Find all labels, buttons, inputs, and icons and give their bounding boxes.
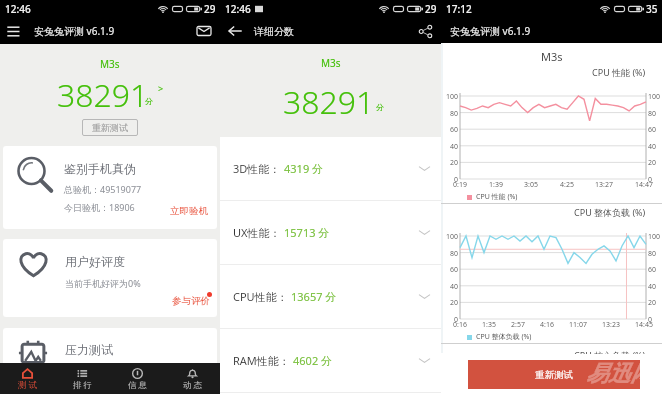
- staticText: 60: [441, 265, 458, 275]
- staticText: 100: [648, 92, 662, 102]
- staticText: 2:57: [511, 320, 525, 330]
- button[interactable]: Back: [228, 24, 242, 38]
- staticText: 60: [648, 265, 662, 275]
- staticText: 3:05: [524, 180, 538, 190]
- button[interactable]: 动态: [165, 363, 220, 394]
- staticText: RAM性能：: [233, 353, 290, 368]
- staticText: 1:39: [489, 180, 503, 190]
- staticText: CPU 整体负载 (%): [476, 332, 532, 342]
- staticText: 13:27: [595, 180, 613, 190]
- button[interactable]: 排行: [55, 363, 110, 394]
- staticText: 100: [441, 232, 458, 242]
- staticText: CPU 性能 (%): [476, 192, 518, 202]
- staticText: 14:47: [635, 180, 653, 190]
- staticText: 12:46: [5, 2, 31, 16]
- staticText: 80: [648, 109, 662, 119]
- staticText: 4:16: [540, 320, 554, 330]
- staticText: 安兔兔评测 v6.1.9: [450, 24, 531, 38]
- staticText: 40: [648, 142, 662, 152]
- staticText: 详细分数: [254, 25, 294, 38]
- staticText: 信息: [127, 380, 148, 391]
- staticText: 13:23: [602, 320, 620, 330]
- staticText: 20: [648, 158, 662, 168]
- staticText: 安兔兔评测 v6.1.9: [34, 24, 115, 38]
- staticText: 0: [441, 315, 458, 325]
- staticText: 11:07: [569, 320, 587, 330]
- staticText: 3D性能：: [233, 161, 281, 176]
- staticText: 80: [648, 249, 662, 259]
- staticText: 29: [204, 2, 216, 16]
- button[interactable]: UX性能：: [220, 201, 441, 264]
- staticText: 鉴别手机真伪: [64, 161, 136, 176]
- staticText: 80: [441, 109, 458, 119]
- staticText: 60: [648, 125, 662, 135]
- staticText: 重新测试: [535, 369, 573, 381]
- staticText: CPU 核心负载 (%): [574, 349, 646, 354]
- staticText: 0: [648, 315, 662, 325]
- staticText: 20: [648, 298, 662, 308]
- staticText: 0:19: [453, 180, 467, 190]
- staticText: 分: [376, 102, 384, 112]
- staticText: >: [158, 82, 164, 94]
- button[interactable]: 3D性能：: [220, 137, 441, 200]
- button[interactable]: 鉴别手机真伪: [3, 146, 217, 229]
- staticText: 0:16: [453, 320, 467, 330]
- staticText: 40: [648, 282, 662, 292]
- staticText: CPU 性能 (%): [592, 66, 646, 78]
- staticText: 60: [441, 125, 458, 135]
- staticText: M3s: [100, 57, 120, 71]
- button[interactable]: 重新测试: [468, 360, 640, 389]
- staticText: 动态: [182, 380, 203, 391]
- staticText: 总验机：49519077: [64, 183, 142, 195]
- staticText: 今日验机：18906: [64, 201, 135, 213]
- staticText: 4602 分: [293, 353, 333, 368]
- button[interactable]: CPU性能：: [220, 265, 441, 328]
- staticText: 0: [648, 175, 662, 185]
- staticText: 测试: [17, 380, 38, 391]
- button[interactable]: Share: [419, 25, 432, 38]
- staticText: 1:35: [482, 320, 496, 330]
- button[interactable]: RAM性能：: [220, 329, 441, 392]
- staticText: 0: [441, 175, 458, 185]
- staticText: 100: [441, 92, 458, 102]
- staticText: 38291: [57, 73, 149, 117]
- staticText: 13657 分: [291, 289, 337, 304]
- staticText: 当前手机好评为0%: [65, 277, 141, 289]
- staticText: 17:12: [446, 2, 472, 16]
- staticText: 15713 分: [284, 225, 330, 240]
- staticText: 29: [425, 2, 437, 16]
- staticText: M3s: [321, 56, 341, 70]
- staticText: CPU 整体负载 (%): [574, 206, 646, 218]
- staticText: 38291: [283, 80, 375, 124]
- staticText: 40: [441, 142, 458, 152]
- staticText: 20: [441, 158, 458, 168]
- staticText: 100: [648, 232, 662, 242]
- staticText: 4319 分: [284, 161, 324, 176]
- staticText: 80: [441, 249, 458, 259]
- button[interactable]: 测试: [0, 363, 55, 394]
- staticText: 14:45: [635, 320, 653, 330]
- staticText: 4:25: [560, 180, 574, 190]
- staticText: 易迅网: [586, 360, 652, 388]
- staticText: 压力测试: [65, 342, 113, 357]
- staticText: 立即验机: [170, 205, 208, 217]
- staticText: 排行: [72, 380, 93, 391]
- staticText: 分: [145, 96, 153, 106]
- staticText: UX性能：: [233, 225, 281, 240]
- staticText: 35: [646, 2, 658, 16]
- button[interactable]: 信息: [110, 363, 165, 394]
- button[interactable]: Messages: [197, 24, 211, 38]
- button[interactable]: Menu: [7, 25, 20, 38]
- staticText: 重新测试: [92, 122, 128, 133]
- staticText: M3s: [541, 49, 563, 64]
- staticText: 20: [441, 298, 458, 308]
- staticText: 参与评价: [172, 295, 210, 307]
- button[interactable]: 压力测试: [3, 328, 217, 372]
- staticText: 12:46: [225, 2, 251, 16]
- button[interactable]: 重新测试: [82, 119, 138, 136]
- button[interactable]: 用户好评度: [3, 239, 217, 317]
- staticText: 用户好评度: [65, 254, 125, 269]
- staticText: CPU性能：: [233, 289, 288, 304]
- staticText: 40: [441, 282, 458, 292]
